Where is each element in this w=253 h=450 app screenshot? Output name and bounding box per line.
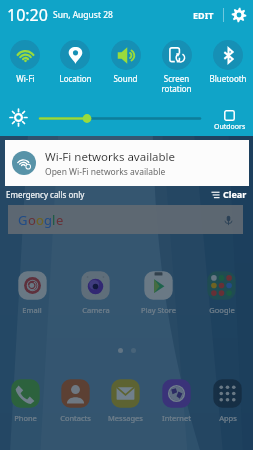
- staticText: Apps: [219, 413, 237, 423]
- staticText: Emergency calls only: [6, 189, 85, 200]
- button[interactable]: EDIT: [190, 7, 217, 23]
- button[interactable]: Messages: [100, 377, 151, 423]
- staticText: Wi-Fi: [16, 73, 35, 84]
- staticText: Sound: [113, 73, 138, 84]
- staticText: Messages: [108, 413, 143, 423]
- button[interactable]: Outdoors: [209, 107, 250, 129]
- button[interactable]: Camera: [64, 269, 127, 315]
- staticText: Clear: [223, 188, 247, 200]
- staticText: g: [44, 211, 52, 229]
- staticText: Internet: [162, 413, 191, 423]
- button[interactable]: Play Store: [127, 269, 190, 315]
- staticText: l: [52, 211, 56, 229]
- staticText: Email: [22, 305, 42, 315]
- button[interactable]: Clear: [211, 188, 247, 200]
- staticText: Outdoors: [214, 122, 246, 129]
- staticText: o: [28, 211, 36, 229]
- staticText: Google: [209, 305, 235, 315]
- staticText: EDIT: [193, 9, 214, 21]
- staticText: Location: [59, 73, 92, 84]
- button[interactable]: Location: [50, 40, 100, 84]
- staticText: Bluetooth: [209, 73, 247, 84]
- staticText: Sun, August 28: [53, 9, 113, 21]
- button[interactable]: Phone: [0, 377, 50, 423]
- staticText: e: [56, 211, 64, 229]
- button[interactable]: Wi-Fi: [0, 40, 50, 84]
- staticText: G: [18, 211, 28, 229]
- staticText: Wi-Fi networks available: [45, 149, 176, 165]
- staticText: Open Wi-Fi networks available: [45, 166, 166, 178]
- staticText: Contacts: [60, 413, 91, 423]
- staticText: 10:20: [7, 4, 48, 26]
- button[interactable]: Contacts: [50, 377, 100, 423]
- button[interactable]: Internet: [151, 377, 202, 423]
- staticText: Phone: [14, 413, 37, 423]
- staticText: Play Store: [141, 305, 176, 315]
- button[interactable]: Google: [190, 269, 253, 315]
- button[interactable]: Email: [0, 269, 64, 315]
- button[interactable]: Apps: [202, 377, 253, 423]
- staticText: Camera: [82, 305, 110, 315]
- staticText: Screen rotation: [161, 73, 192, 94]
- button[interactable]: Wi-Fi networks available: [5, 140, 249, 186]
- staticText: o: [36, 211, 44, 229]
- button[interactable]: Settings: [231, 7, 247, 23]
- button[interactable]: G: [8, 205, 243, 234]
- button[interactable]: Screen rotation: [151, 40, 202, 94]
- button[interactable]: Sound: [100, 40, 151, 84]
- button[interactable]: Bluetooth: [202, 40, 253, 84]
